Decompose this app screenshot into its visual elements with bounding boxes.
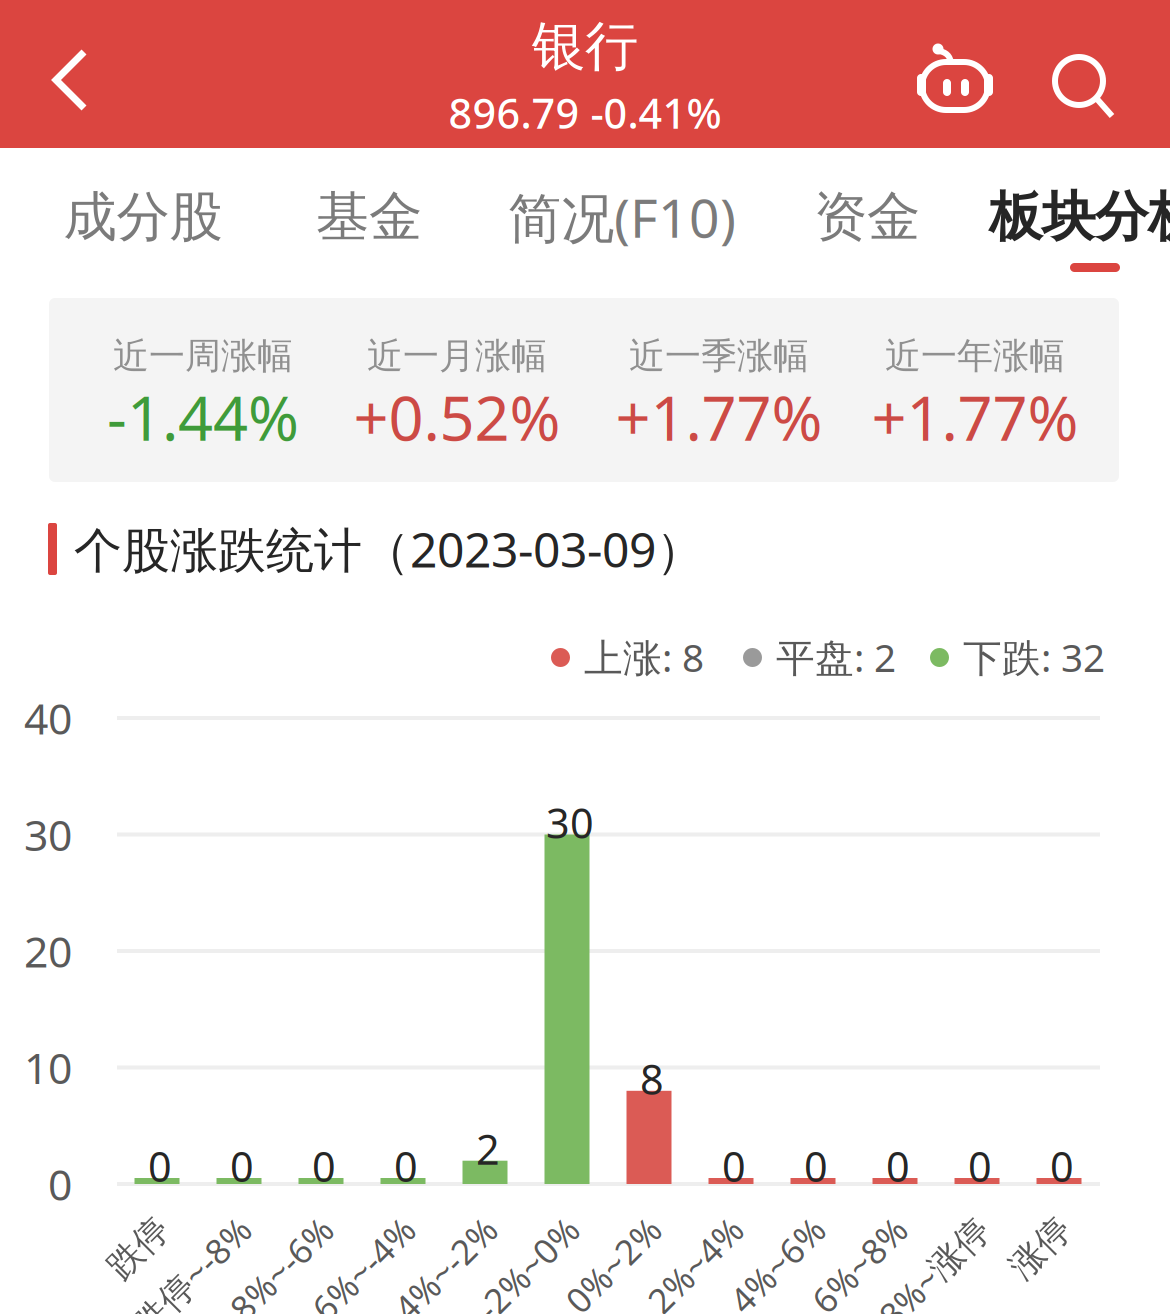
staticText: 10 [24, 1039, 72, 1096]
staticText: 30 [24, 806, 72, 863]
staticText: 2%~4% [619, 1200, 737, 1246]
staticText: 0%~2% [537, 1200, 655, 1246]
staticText: 跌停~-8% [95, 1200, 245, 1246]
staticText: 涨停 [995, 1202, 1065, 1244]
staticText: 跌停 [93, 1202, 163, 1244]
staticText: 0 [148, 1139, 172, 1193]
staticText: 20 [24, 923, 72, 979]
staticText: 近一周涨幅 [113, 334, 293, 378]
staticText: 近一年涨幅 [885, 334, 1065, 378]
button[interactable]: 板块分析 [955, 148, 1170, 285]
staticText: 成分股 [63, 184, 222, 250]
staticText: 0 [1050, 1139, 1074, 1193]
staticText: -2%~0% [444, 1200, 573, 1246]
button[interactable]: Search [1025, 14, 1145, 162]
button[interactable]: 成分股 [3, 162, 283, 272]
staticText: 个股涨跌统计（2023-03-09） [74, 517, 704, 581]
staticText: 平盘: 2 [776, 631, 896, 683]
staticText: 896.79 -0.41% [448, 85, 721, 140]
button[interactable]: 资金 [727, 162, 1007, 272]
staticText: -1.44% [107, 376, 299, 458]
button[interactable]: Back [1, 6, 141, 154]
staticText: 银行 [532, 14, 638, 79]
staticText: 2 [476, 1121, 500, 1176]
staticText: 4%~6% [701, 1200, 819, 1246]
staticText: 0 [722, 1139, 746, 1193]
staticText: 8 [640, 1051, 664, 1106]
staticText: 0 [968, 1139, 992, 1193]
staticText: 板块分析 [989, 184, 1170, 250]
staticText: 6%~8% [783, 1200, 901, 1246]
staticText: -4%~-2% [351, 1200, 491, 1246]
staticText: 简况(F10) [508, 182, 736, 252]
staticText: 0 [804, 1139, 828, 1193]
staticText: 近一月涨幅 [367, 334, 547, 378]
staticText: +1.77% [615, 376, 822, 458]
staticText: 0 [394, 1139, 418, 1193]
staticText: 资金 [814, 184, 920, 250]
staticText: 下跌: 32 [963, 631, 1105, 683]
staticText: 30 [546, 795, 594, 850]
staticText: 上涨: 8 [584, 631, 704, 683]
staticText: 8%~涨停 [844, 1200, 983, 1246]
staticText: 0 [312, 1139, 336, 1193]
staticText: +1.77% [871, 376, 1078, 458]
button[interactable]: 基金 [229, 162, 509, 272]
staticText: -8%~-6% [187, 1200, 327, 1246]
staticText: 0 [48, 1156, 72, 1212]
staticText: 基金 [316, 184, 422, 250]
button[interactable]: 简况(F10) [482, 162, 762, 272]
staticText: 0 [230, 1139, 254, 1193]
button[interactable]: AI assistant [895, 0, 1015, 148]
staticText: 近一季涨幅 [629, 334, 809, 378]
staticText: 0 [886, 1139, 910, 1193]
staticText: +0.52% [353, 376, 560, 458]
staticText: 40 [24, 690, 72, 746]
staticText: -6%~-4% [269, 1200, 409, 1246]
